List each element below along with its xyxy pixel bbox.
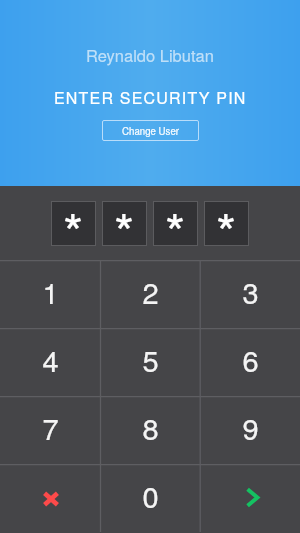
staticText: 6	[242, 339, 259, 381]
staticText: 9	[242, 407, 259, 449]
button[interactable]: PIN digit	[102, 201, 147, 246]
button[interactable]: Change User	[102, 120, 199, 141]
staticText: 7	[42, 407, 59, 449]
button[interactable]: 8	[100, 396, 200, 464]
staticText: 4	[42, 339, 59, 381]
button[interactable]: 6	[200, 328, 300, 396]
staticText: 8	[142, 407, 159, 449]
button[interactable]: Confirm	[200, 464, 300, 532]
button[interactable]: 4	[0, 328, 100, 396]
staticText: *	[216, 192, 237, 237]
staticText: 0	[142, 475, 159, 517]
button[interactable]: 2	[100, 260, 200, 328]
staticText: 1	[42, 271, 59, 313]
staticText: *	[165, 192, 186, 237]
button[interactable]: Delete	[0, 464, 100, 532]
staticText: Change User	[122, 124, 180, 138]
button[interactable]: 0	[100, 464, 200, 532]
staticText: Reynaldo Libutan	[86, 43, 214, 67]
button[interactable]: 3	[200, 260, 300, 328]
other: Confirm	[246, 487, 259, 508]
staticText: 5	[142, 339, 159, 381]
button[interactable]: PIN digit	[204, 201, 249, 246]
button[interactable]: PIN digit	[153, 201, 198, 246]
button[interactable]: 7	[0, 396, 100, 464]
button[interactable]: 1	[0, 260, 100, 328]
button[interactable]: PIN digit	[51, 201, 96, 246]
other: Delete	[43, 491, 59, 507]
button[interactable]: 5	[100, 328, 200, 396]
button[interactable]: 9	[200, 396, 300, 464]
staticText: *	[114, 192, 135, 237]
staticText: 2	[142, 271, 159, 313]
staticText: *	[63, 192, 84, 237]
staticText: 3	[242, 271, 259, 313]
staticText: ENTER SECURITY PIN	[54, 86, 247, 109]
